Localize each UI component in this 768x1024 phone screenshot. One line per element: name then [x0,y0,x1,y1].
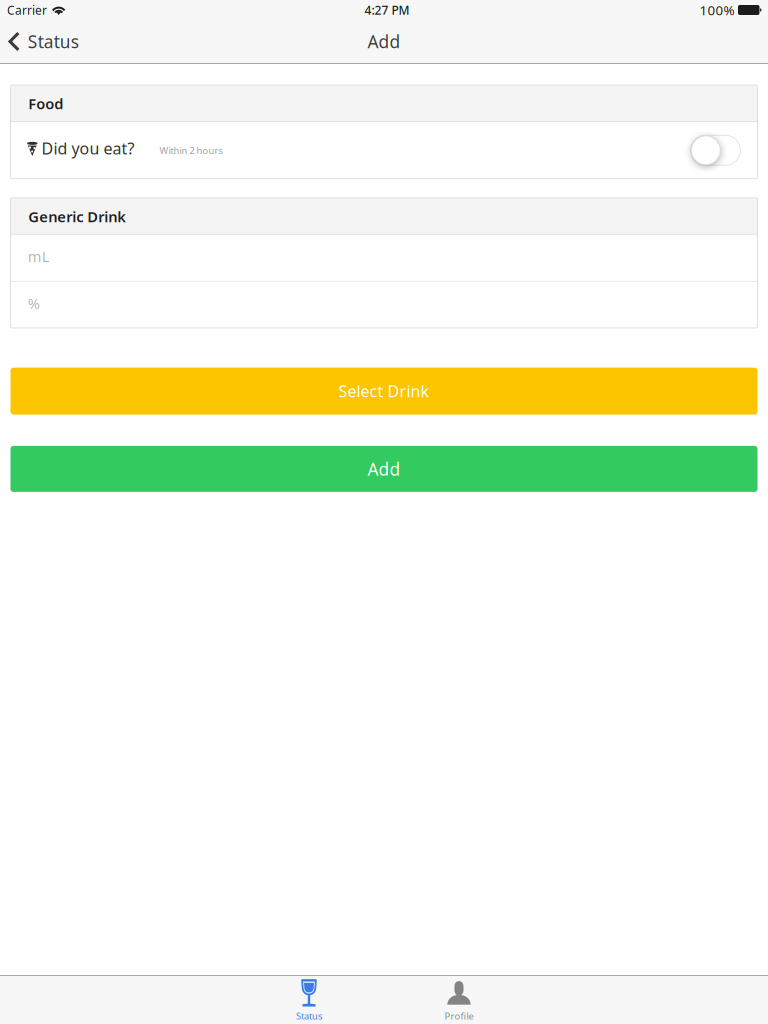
staticText: Did you eat? [41,138,134,159]
button[interactable]: Add [10,446,757,492]
staticText: Profile [444,1010,473,1022]
staticText: Food [28,94,63,113]
button[interactable]: Select Drink [10,368,757,415]
staticText: Select Drink [338,380,429,402]
staticText: Add [367,457,400,480]
button[interactable]: Status [0,20,89,63]
staticText: % [28,294,40,313]
button[interactable]: Status [234,975,384,1024]
staticText: Generic Drink [28,207,126,226]
button[interactable]: % [10,282,757,328]
staticText: Within 2 hours [159,144,222,156]
staticText: mL [28,247,50,266]
staticText: Carrier [7,2,47,18]
button[interactable]: Profile [384,975,534,1024]
button[interactable]: mL [10,235,757,281]
staticText: 4:27 PM [364,2,409,18]
staticText: Status [296,1010,322,1022]
staticText: Add [367,30,400,53]
button[interactable]: Did you eat, off [691,129,740,171]
staticText: 100% [699,1,734,19]
staticText: Status [28,30,79,53]
